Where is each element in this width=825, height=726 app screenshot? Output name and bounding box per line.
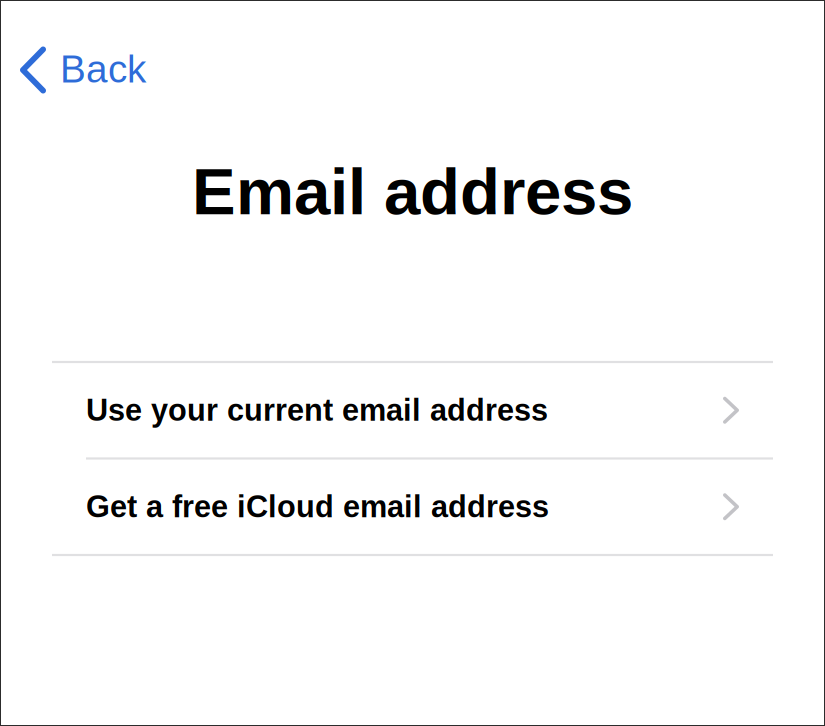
button[interactable]: Back [0,44,160,96]
button[interactable]: Use your current email address [0,363,825,457]
staticText: Use your current email address [86,393,548,427]
staticText: Email address [192,155,633,228]
button[interactable]: Get a free iCloud email address [0,459,825,554]
staticText: Get a free iCloud email address [86,490,549,524]
staticText: Back [60,47,146,91]
